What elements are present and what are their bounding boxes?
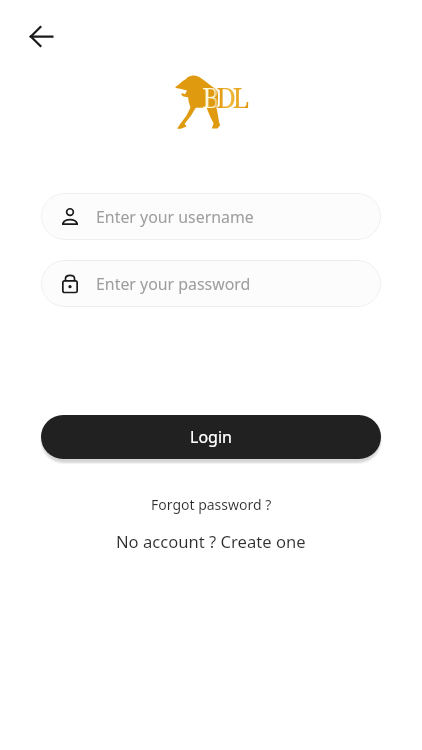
button[interactable]: Login	[41, 415, 381, 459]
button[interactable]: Enter your password	[41, 260, 381, 307]
button[interactable]: Back	[18, 13, 64, 59]
staticText: BDL	[202, 79, 246, 116]
button[interactable]: No account ? Create one	[116, 530, 306, 553]
staticText: Enter your username	[96, 206, 254, 228]
button[interactable]: Forgot password ?	[151, 495, 272, 514]
staticText: Login	[190, 426, 232, 448]
button[interactable]: Enter your username	[41, 193, 381, 240]
staticText: Enter your password	[96, 273, 251, 295]
